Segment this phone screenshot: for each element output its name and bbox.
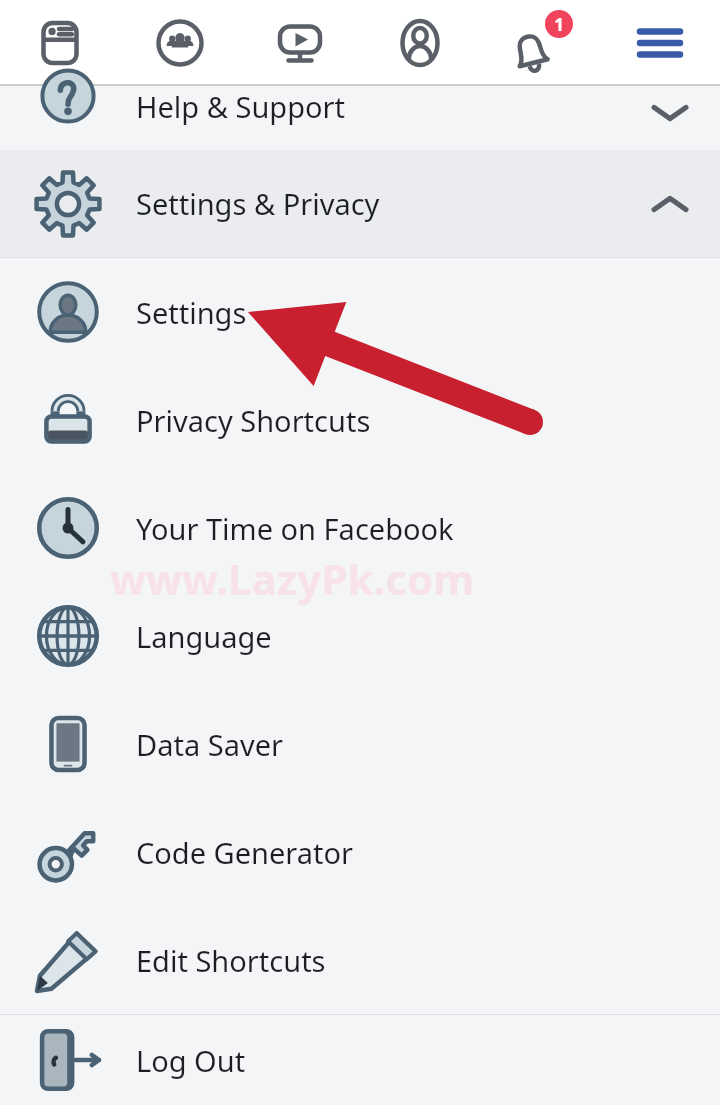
button[interactable]: Help & Support xyxy=(0,86,720,150)
button[interactable]: Language xyxy=(0,582,720,690)
staticText: Log Out xyxy=(136,1041,246,1080)
button[interactable]: Settings & Privacy xyxy=(0,150,720,257)
staticText: www.LazyPk.com xyxy=(110,550,475,607)
staticText: Settings xyxy=(136,293,247,332)
staticText: Code Generator xyxy=(136,833,354,872)
button[interactable]: Menu xyxy=(600,0,720,86)
button[interactable]: Friends xyxy=(120,0,240,86)
staticText: Settings & Privacy xyxy=(136,184,380,223)
staticText: Your Time on Facebook xyxy=(136,509,454,548)
button[interactable]: Profile xyxy=(360,0,480,86)
staticText: 1 xyxy=(554,13,564,36)
button[interactable]: News Feed xyxy=(0,0,120,86)
button[interactable]: Edit Shortcuts xyxy=(0,906,720,1014)
button[interactable]: Notifications xyxy=(480,0,600,86)
staticText: Privacy Shortcuts xyxy=(136,401,371,440)
button[interactable]: Log Out xyxy=(0,1015,720,1105)
button[interactable]: Your Time on Facebook xyxy=(0,474,720,582)
button[interactable]: Privacy Shortcuts xyxy=(0,366,720,474)
staticText: Edit Shortcuts xyxy=(136,941,326,980)
button[interactable]: Data Saver xyxy=(0,690,720,798)
button[interactable]: Settings xyxy=(0,258,720,366)
button[interactable]: Code Generator xyxy=(0,798,720,906)
staticText: Language xyxy=(136,617,272,656)
button[interactable]: Watch xyxy=(240,0,360,86)
staticText: Help & Support xyxy=(136,87,345,126)
staticText: Data Saver xyxy=(136,725,283,764)
